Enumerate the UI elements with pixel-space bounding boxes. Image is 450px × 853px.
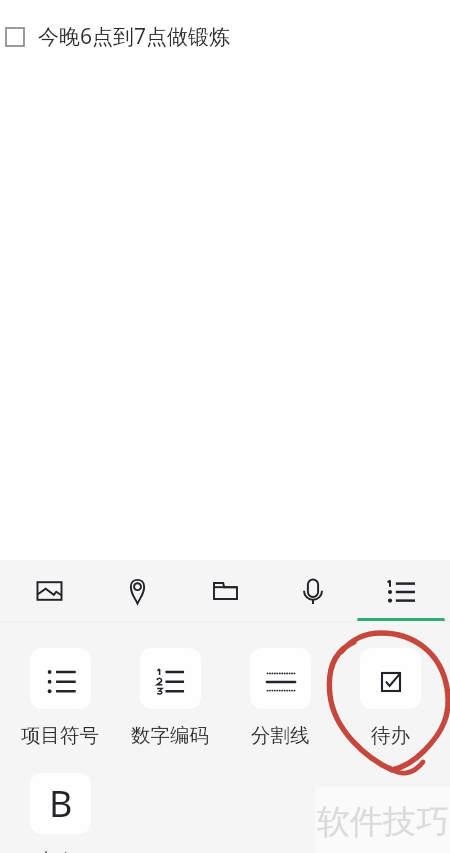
staticText: 待办 [371, 723, 410, 748]
button[interactable]: 数字编码 [115, 648, 225, 748]
button[interactable]: Text formatting [357, 560, 445, 621]
button[interactable]: Voice input [269, 560, 357, 621]
button[interactable]: Attachments [181, 560, 269, 621]
button[interactable]: 分割线 [225, 648, 335, 748]
staticText: 今晚6点到7点做锻炼 [38, 22, 231, 51]
button[interactable]: Insert location [93, 560, 181, 621]
staticText: 分割线 [251, 723, 310, 748]
staticText: B [49, 779, 73, 828]
staticText: 加粗 [41, 848, 80, 853]
button[interactable]: Toggle todo item [5, 27, 25, 47]
button[interactable]: 项目符号 [5, 648, 115, 748]
staticText: 数字编码 [131, 723, 209, 748]
button[interactable]: 待办 [335, 648, 445, 748]
button[interactable]: B [5, 773, 115, 853]
button[interactable]: Insert image [5, 560, 93, 621]
staticText: 项目符号 [21, 723, 99, 748]
staticText: 软件技巧 [317, 801, 449, 843]
